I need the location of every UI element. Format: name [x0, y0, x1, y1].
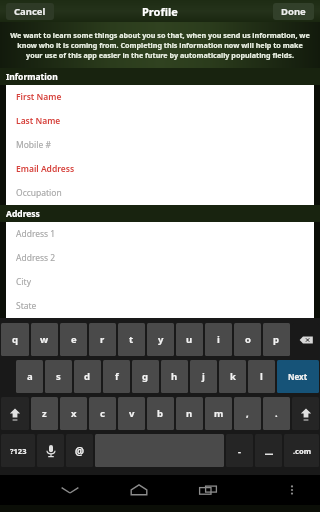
staticText: v: [129, 407, 135, 420]
staticText: Next: [288, 371, 308, 382]
staticText: First Name: [16, 91, 62, 103]
button[interactable]: g: [132, 360, 159, 393]
staticText: c: [100, 407, 105, 420]
button[interactable]: Cancel: [6, 3, 54, 20]
button[interactable]: q: [1, 323, 29, 356]
staticText: .com: [293, 446, 311, 456]
staticText: n: [186, 407, 193, 420]
button[interactable]: .: [263, 397, 290, 430]
button[interactable]: Shift: [292, 397, 319, 430]
staticText: j: [202, 370, 205, 383]
button[interactable]: r: [89, 323, 116, 356]
staticText: State: [16, 300, 37, 312]
staticText: Done: [281, 5, 306, 18]
button[interactable]: b: [147, 397, 174, 430]
button[interactable]: -: [226, 434, 253, 467]
button[interactable]: f: [103, 360, 130, 393]
staticText: k: [230, 370, 236, 383]
staticText: t: [129, 333, 134, 346]
staticText: f: [115, 370, 119, 383]
button[interactable]: o: [234, 323, 261, 356]
staticText: Occupation: [16, 187, 62, 199]
button[interactable]: i: [205, 323, 232, 356]
button[interactable]: t: [118, 323, 145, 356]
staticText: p: [273, 333, 280, 346]
button[interactable]: .com: [284, 434, 319, 467]
button[interactable]: Back: [55, 475, 85, 505]
staticText: @: [75, 444, 84, 458]
staticText: Email Address: [16, 163, 75, 175]
button[interactable]: j: [190, 360, 217, 393]
button[interactable]: Address 1: [6, 222, 314, 246]
staticText: i: [217, 333, 220, 346]
button[interactable]: n: [176, 397, 203, 430]
button[interactable]: Last Name: [6, 109, 314, 133]
button[interactable]: ?123: [1, 434, 35, 467]
staticText: u: [186, 333, 193, 346]
staticText: Address 2: [16, 252, 56, 264]
button[interactable]: State: [6, 294, 314, 318]
button[interactable]: Occupation: [6, 181, 314, 205]
staticText: Address 1: [16, 228, 56, 240]
button[interactable]: x: [60, 397, 87, 430]
staticText: x: [71, 407, 77, 420]
button[interactable]: More options: [277, 475, 307, 505]
staticText: Address: [6, 208, 40, 220]
button[interactable]: u: [176, 323, 203, 356]
staticText: b: [157, 407, 164, 420]
button[interactable]: Next: [277, 360, 319, 393]
button[interactable]: Shift: [1, 397, 29, 430]
staticText: r: [100, 333, 105, 346]
button[interactable]: First Name: [6, 85, 314, 109]
staticText: w: [40, 333, 49, 346]
button[interactable]: k: [219, 360, 246, 393]
staticText: o: [245, 333, 251, 346]
button[interactable]: w: [31, 323, 58, 356]
button[interactable]: Backspace: [292, 323, 319, 356]
staticText: ,: [246, 407, 249, 420]
staticText: y: [158, 333, 164, 346]
button[interactable]: Mobile #: [6, 133, 314, 157]
staticText: l: [260, 370, 263, 383]
button[interactable]: City: [6, 270, 314, 294]
button[interactable]: a: [16, 360, 43, 393]
staticText: h: [171, 370, 178, 383]
button[interactable]: h: [161, 360, 188, 393]
button[interactable]: Voice input: [37, 434, 64, 467]
staticText: a: [27, 370, 33, 383]
button[interactable]: Done: [273, 3, 314, 20]
button[interactable]: Address 2: [6, 246, 314, 270]
button[interactable]: s: [45, 360, 72, 393]
button[interactable]: Email Address: [6, 157, 314, 181]
button[interactable]: l: [248, 360, 275, 393]
button[interactable]: d: [74, 360, 101, 393]
button[interactable]: m: [205, 397, 232, 430]
staticText: Information: [6, 71, 58, 83]
button[interactable]: e: [60, 323, 87, 356]
staticText: z: [42, 407, 47, 420]
button[interactable]: Underscore: [255, 434, 282, 467]
button[interactable]: Recents: [193, 475, 223, 505]
button[interactable]: ,: [234, 397, 261, 430]
staticText: s: [56, 370, 61, 383]
staticText: Last Name: [16, 115, 61, 127]
button[interactable]: v: [118, 397, 145, 430]
button[interactable]: z: [31, 397, 58, 430]
button[interactable]: @: [66, 434, 93, 467]
button[interactable]: y: [147, 323, 174, 356]
staticText: Profile: [142, 4, 178, 19]
staticText: -: [238, 445, 241, 457]
button[interactable]: Home: [124, 475, 154, 505]
staticText: g: [142, 370, 149, 383]
staticText: We want to learn some things about you s…: [10, 30, 310, 60]
staticText: q: [12, 333, 19, 346]
staticText: ?123: [10, 446, 27, 456]
button[interactable]: c: [89, 397, 116, 430]
staticText: d: [84, 370, 91, 383]
staticText: e: [71, 333, 77, 346]
button[interactable]: p: [263, 323, 290, 356]
staticText: Mobile #: [16, 139, 51, 151]
staticText: City: [16, 276, 31, 288]
staticText: .: [275, 407, 278, 420]
